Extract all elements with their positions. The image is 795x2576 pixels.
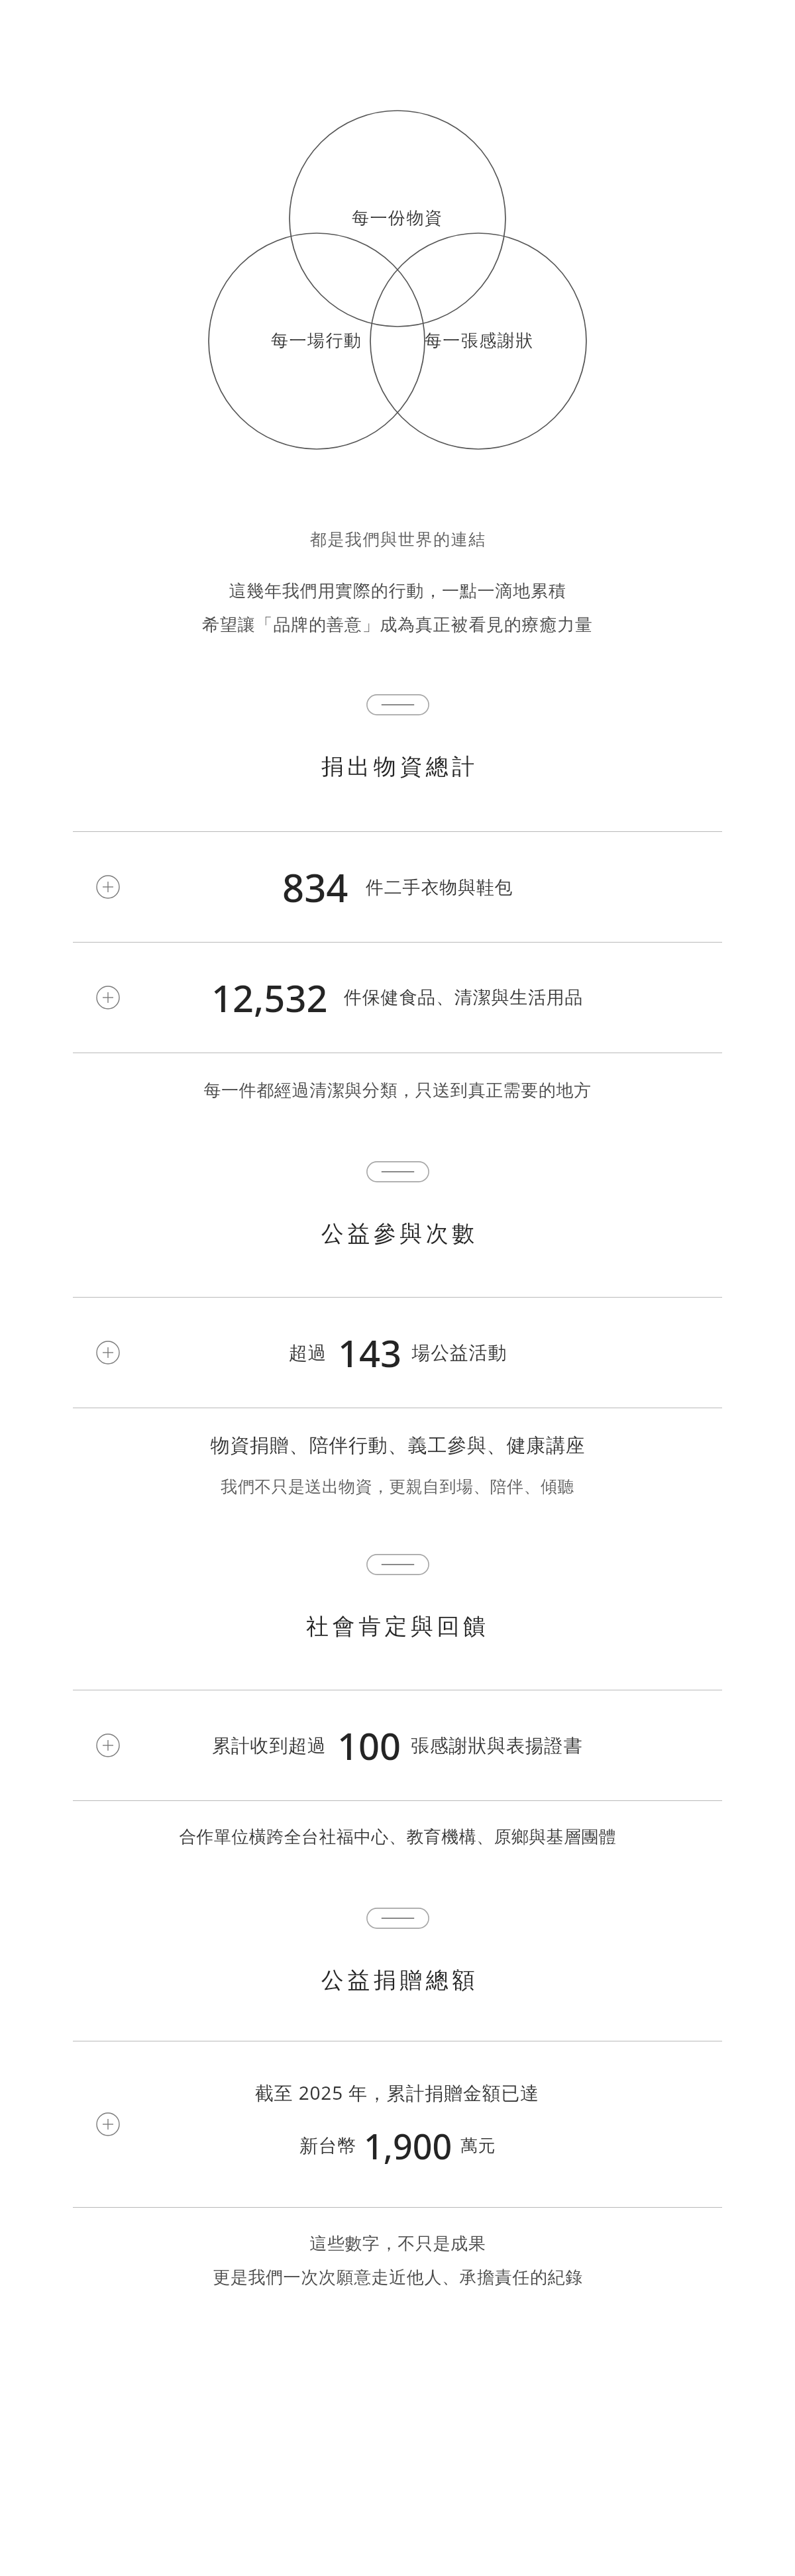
staticText: 超過	[289, 1341, 327, 1365]
button[interactable]: Expand	[0, 832, 795, 942]
staticText: 場公益活動	[411, 1341, 507, 1365]
staticText: 每一份物資	[352, 207, 443, 229]
other: Expand	[96, 1733, 120, 1757]
staticText: 希望讓「品牌的善意」成為真正被看見的療癒力量	[202, 614, 593, 636]
staticText: 物資捐贈、陪伴行動、義工參與、健康講座	[210, 1433, 586, 1458]
staticText: 社會肯定與回饋	[306, 1612, 490, 1641]
button[interactable]: Expand	[0, 1298, 795, 1408]
button[interactable]: Section divider	[361, 1549, 435, 1580]
other: Expand	[96, 875, 120, 899]
staticText: 新台幣	[299, 2134, 357, 2157]
staticText: 都是我們與世界的連結	[309, 529, 486, 550]
staticText: 公益參與次數	[319, 1219, 476, 1248]
staticText: 截至 2025 年，累計捐贈金額已達	[255, 2080, 540, 2105]
staticText: 這幾年我們用實際的行動，一點一滴地累積	[229, 580, 566, 602]
button[interactable]: Section divider	[361, 1156, 435, 1188]
button[interactable]: Expand	[0, 2041, 795, 2207]
staticText: 每一張感謝狀	[424, 330, 533, 352]
other: Expand	[96, 986, 120, 1009]
staticText: 這些數字，不只是成果	[309, 2233, 486, 2255]
button[interactable]: Expand	[0, 1690, 795, 1800]
button[interactable]: Section divider	[361, 689, 435, 721]
staticText: 張感謝狀與表揚證書	[411, 1734, 583, 1757]
staticText: 更是我們一次次願意走近他人、承擔責任的紀錄	[213, 2267, 583, 2289]
staticText: 合作單位橫跨全台社福中心、教育機構、原鄉與基層團體	[179, 1826, 616, 1848]
staticText: 每一場行動	[271, 330, 362, 352]
staticText: 100	[337, 1720, 401, 1771]
staticText: 1,900	[364, 2122, 452, 2169]
staticText: 我們不只是送出物資，更親自到場、陪伴、傾聽	[221, 1476, 574, 1497]
staticText: 143	[338, 1327, 402, 1378]
other: Expand	[96, 2112, 120, 2136]
button[interactable]: 社會肯定與回饋	[299, 1610, 496, 1643]
staticText: 萬元	[460, 2135, 496, 2157]
button[interactable]: 捐出物資總計	[313, 750, 483, 784]
other: Expand	[96, 1341, 120, 1365]
staticText: 834	[282, 861, 348, 913]
staticText: 公益捐贈總額	[319, 1966, 476, 1994]
button[interactable]: Expand	[0, 943, 795, 1053]
staticText: 捐出物資總計	[319, 752, 476, 781]
button[interactable]: 公益參與次數	[313, 1217, 483, 1251]
staticText: 件二手衣物與鞋包	[366, 876, 513, 899]
staticText: 累計收到超過	[212, 1734, 327, 1757]
staticText: 12,532	[211, 972, 328, 1023]
staticText: 每一件都經過清潔與分類，只送到真正需要的地方	[203, 1080, 592, 1102]
staticText: 件保健食品、清潔與生活用品	[344, 986, 584, 1009]
button[interactable]: Section divider	[361, 1902, 435, 1934]
button[interactable]: 公益捐贈總額	[313, 1963, 483, 1997]
